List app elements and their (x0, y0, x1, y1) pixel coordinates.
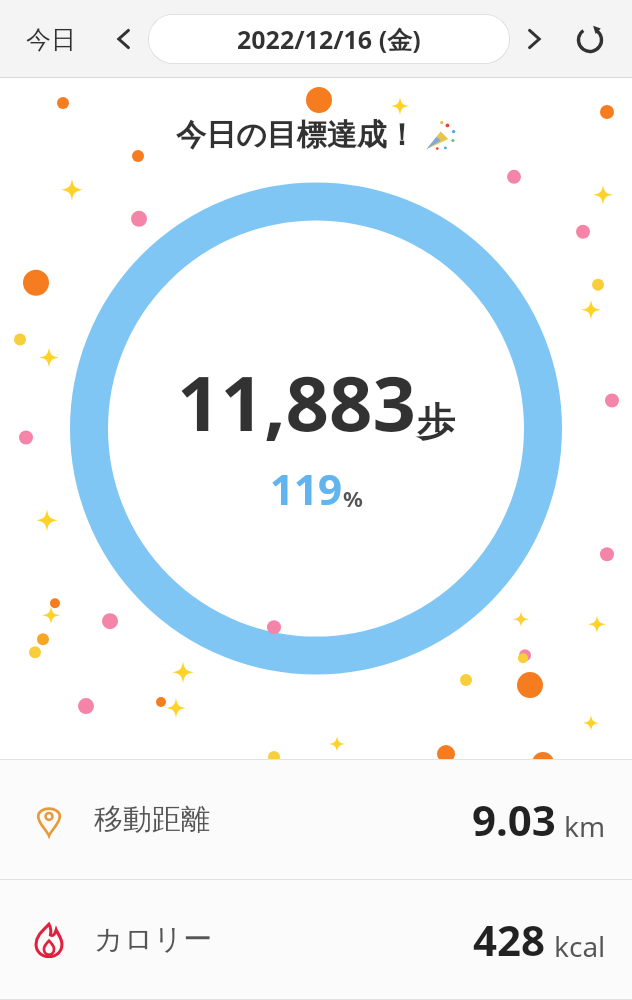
button[interactable]: 2022/12/16 (金) (148, 14, 510, 64)
staticText: カロリー (94, 921, 213, 958)
staticText: kcal (554, 927, 606, 965)
button[interactable]: カロリー (0, 880, 632, 999)
staticText: 119 (270, 460, 343, 517)
button[interactable]: 今日 (20, 16, 82, 63)
button[interactable]: Next day (514, 19, 554, 59)
staticText: 歩 (417, 398, 455, 446)
staticText: 今日 (26, 24, 76, 55)
button[interactable]: Refresh (568, 17, 612, 61)
button[interactable]: 移動距離 (0, 760, 632, 879)
staticText: 11,883 (177, 350, 417, 454)
staticText: km (564, 807, 606, 845)
staticText: 428 (473, 911, 546, 968)
staticText: 移動距離 (94, 801, 210, 838)
staticText: 2022/12/16 (金) (237, 22, 421, 56)
button[interactable]: Previous day (104, 19, 144, 59)
staticText: 今日の目標達成！ (176, 116, 417, 154)
staticText: % (343, 483, 363, 513)
staticText: 9.03 (472, 791, 556, 848)
